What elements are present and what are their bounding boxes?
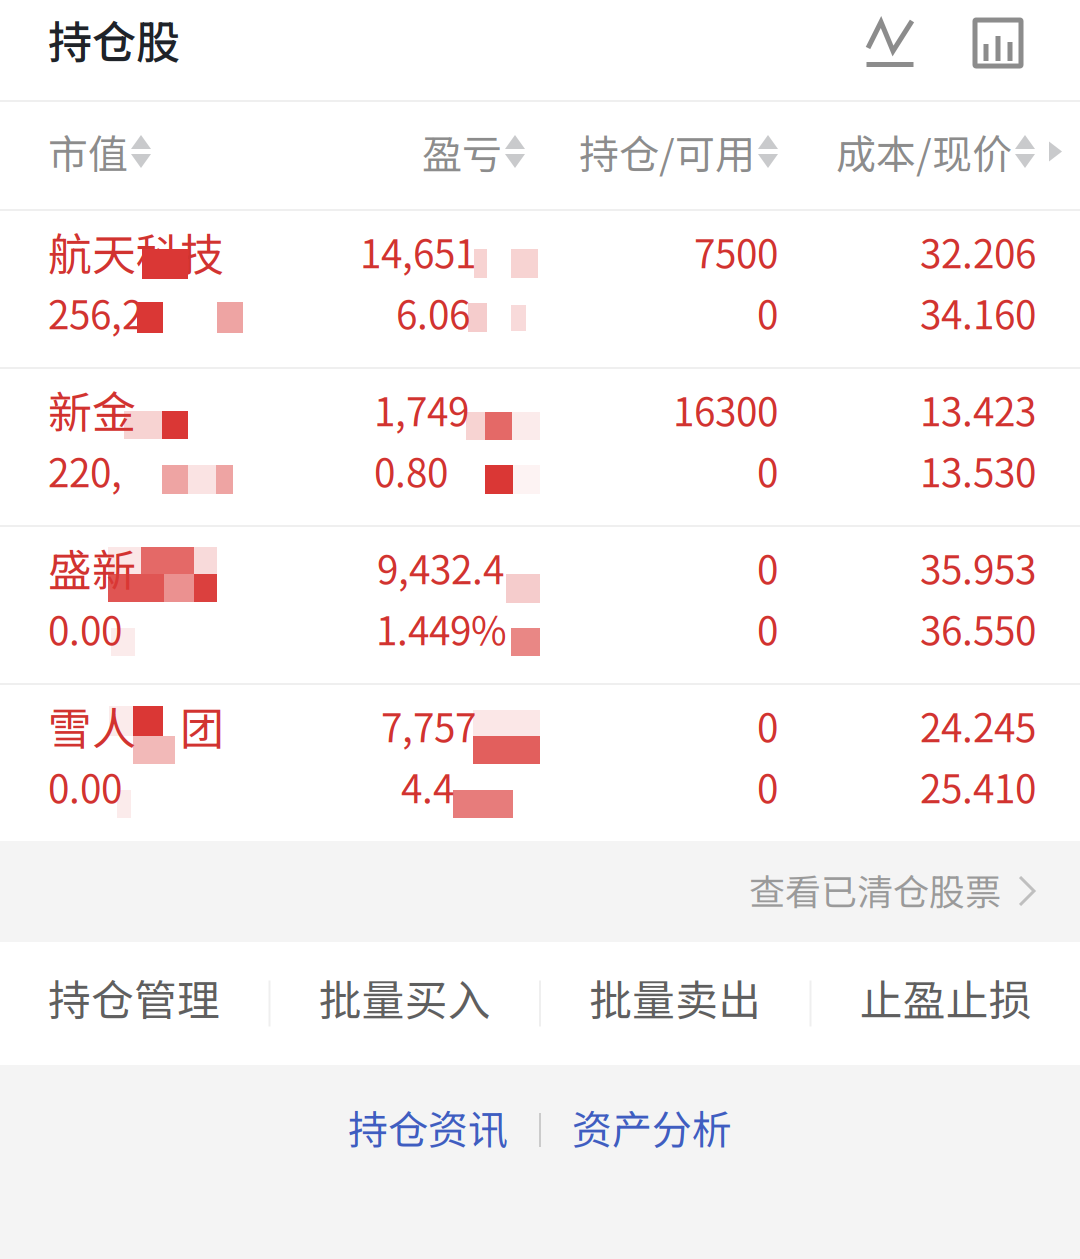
button[interactable]: 持仓/可用 [579,122,778,180]
staticText: 持仓管理 [48,967,220,1028]
button[interactable]: 走势图 [862,22,918,78]
button[interactable]: 盈亏 [422,122,525,180]
staticText: 24.245 [920,697,1036,753]
staticText: 批量买入 [319,967,491,1028]
staticText: 9,432.4 [377,539,504,595]
staticText: 持仓/可用 [579,122,755,180]
button[interactable]: 市值 [48,122,151,180]
staticText: 13.530 [920,442,1036,498]
staticText: 0.00 [48,758,122,814]
staticText: 256,2 [48,284,143,340]
button[interactable]: 持仓资讯 [317,1087,539,1173]
staticText: 市值 [48,122,128,180]
button[interactable]: 盛新 [0,527,1080,683]
staticText: 资产分析 [572,1098,732,1156]
staticText: 34.160 [920,284,1036,340]
button[interactable]: 成本/现价 [836,122,1035,180]
button[interactable]: 批量买入 [270,942,539,1065]
button[interactable]: 止盈止损 [811,942,1080,1065]
staticText: 持仓股 [48,7,180,71]
staticText: 新金 [48,378,136,441]
staticText: 盈亏 [422,122,502,180]
staticText: 止盈止损 [860,967,1032,1028]
staticText: 220, [48,442,122,498]
button[interactable]: 资产分析 [970,22,1026,78]
staticText: 持仓资讯 [348,1098,508,1156]
staticText: 7500 [694,223,778,279]
staticText: 盛新 [48,536,136,599]
staticText: 1,749 [374,381,469,437]
staticText: 13.423 [920,381,1036,437]
button[interactable]: 航天科技 [0,211,1080,367]
staticText: 1.449% [376,600,507,656]
staticText: 0 [757,284,778,340]
staticText: 0.80 [374,442,448,498]
staticText: 0.00 [48,600,122,656]
button[interactable]: 雪人 团 [0,685,1080,841]
staticText: 16300 [673,381,778,437]
staticText: 成本/现价 [836,122,1012,180]
staticText: 0 [757,697,778,753]
staticText: 0 [757,600,778,656]
staticText: 批量卖出 [589,967,761,1028]
staticText: 35.953 [920,539,1036,595]
button[interactable]: 批量卖出 [541,942,809,1065]
staticText: 雪人 团 [48,694,224,757]
staticText: 25.410 [920,758,1036,814]
staticText: 查看已清仓股票 [749,863,1001,915]
button[interactable]: 查看已清仓股票 [0,841,1080,942]
staticText: 14,651 [360,223,476,279]
staticText: 航天科技 [48,220,224,283]
staticText: 7,757 [381,697,476,753]
staticText: 32.206 [920,223,1036,279]
staticText: 4.4 [401,758,454,814]
button[interactable]: 新金 [0,369,1080,525]
staticText: 6.06 [396,284,470,340]
staticText: 0 [757,442,778,498]
staticText: 0 [757,758,778,814]
staticText: 36.550 [920,600,1036,656]
staticText: 0 [757,539,778,595]
button[interactable]: 持仓管理 [0,942,268,1065]
button[interactable]: 更多列 [1049,141,1062,161]
button[interactable]: 资产分析 [541,1087,763,1173]
